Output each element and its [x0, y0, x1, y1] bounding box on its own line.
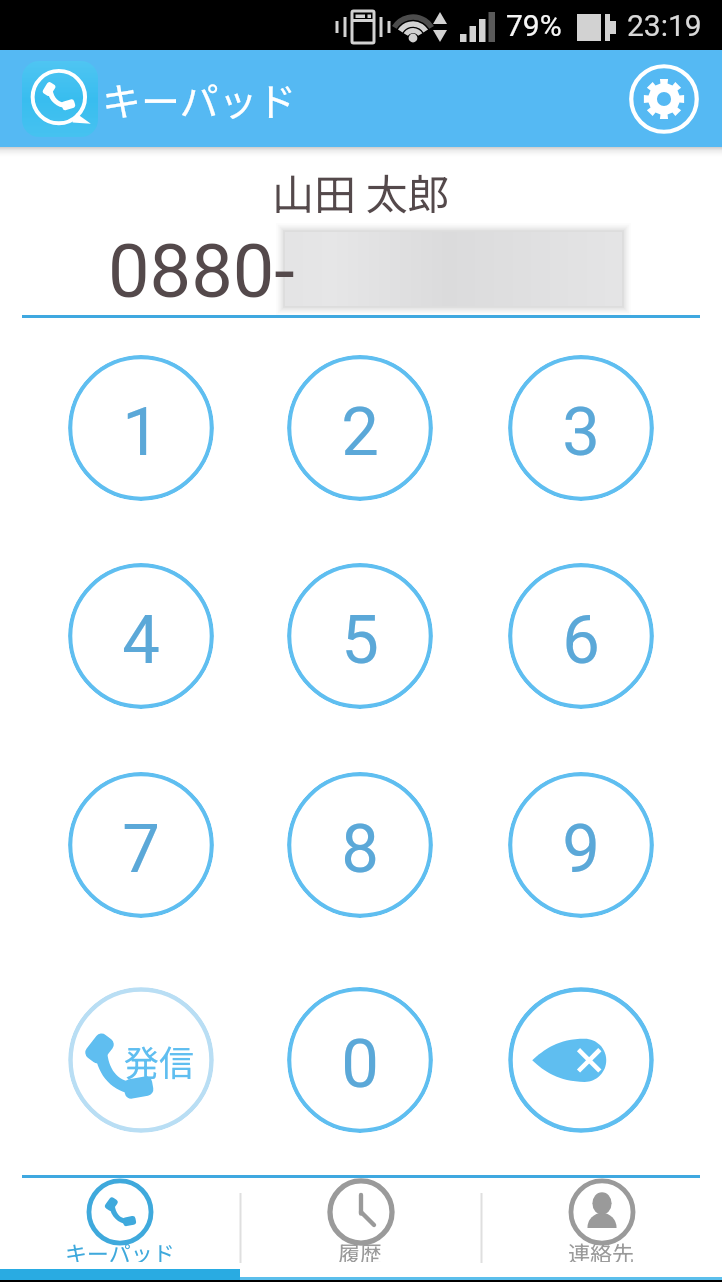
- staticText: 2: [341, 393, 379, 472]
- staticText: キーパッド: [65, 1236, 175, 1262]
- button[interactable]: 1: [68, 355, 214, 501]
- button[interactable]: 9: [508, 772, 654, 918]
- button[interactable]: Settings: [628, 63, 700, 135]
- staticText: 8: [341, 810, 379, 889]
- staticText: 発信: [124, 1035, 195, 1086]
- button[interactable]: 4: [68, 563, 214, 709]
- button[interactable]: 0: [287, 987, 433, 1133]
- staticText: 山田 太郎: [272, 161, 450, 222]
- staticText: 3: [562, 393, 600, 472]
- button[interactable]: 5: [287, 563, 433, 709]
- staticText: キーパッド: [102, 71, 297, 127]
- staticText: 4: [122, 601, 160, 680]
- staticText: 9: [562, 810, 600, 889]
- button[interactable]: 連絡先: [481, 1180, 722, 1282]
- staticText: 23:19: [627, 8, 702, 43]
- button[interactable]: 8: [287, 772, 433, 918]
- staticText: 6: [562, 601, 600, 680]
- other: Backspace: [508, 987, 654, 1133]
- button[interactable]: 6: [508, 563, 654, 709]
- button[interactable]: 3: [508, 355, 654, 501]
- staticText: 履歴: [338, 1236, 383, 1262]
- staticText: 0880-: [108, 228, 295, 315]
- button[interactable]: キーパッド: [0, 1180, 240, 1282]
- staticText: 7: [122, 810, 160, 889]
- staticText: 0: [341, 1025, 379, 1104]
- staticText: 連絡先: [568, 1236, 635, 1262]
- button[interactable]: 発信: [68, 987, 214, 1133]
- button[interactable]: 2: [287, 355, 433, 501]
- button[interactable]: Backspace: [508, 987, 654, 1133]
- staticText: 79%: [506, 8, 562, 43]
- button[interactable]: 履歴: [240, 1180, 481, 1282]
- staticText: 1: [122, 393, 160, 472]
- button[interactable]: 7: [68, 772, 214, 918]
- staticText: 5: [341, 601, 379, 680]
